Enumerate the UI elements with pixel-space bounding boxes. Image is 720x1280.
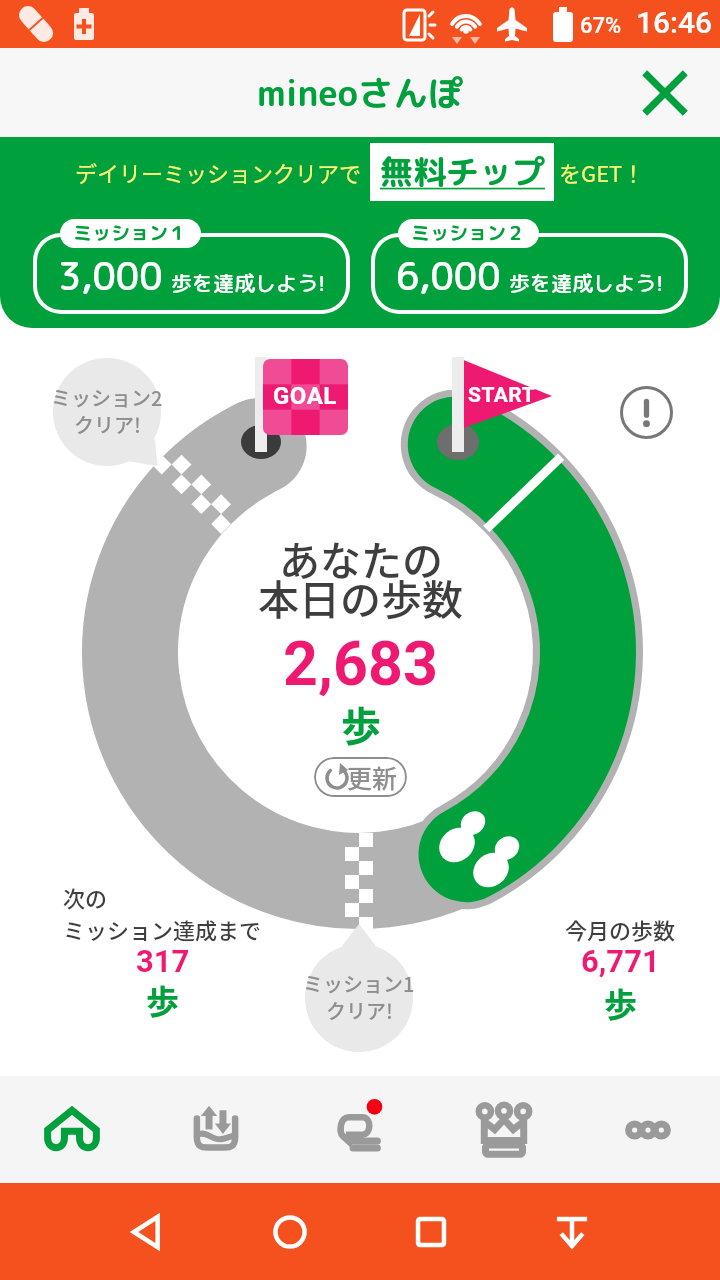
button[interactable]: 更新 bbox=[314, 757, 407, 797]
staticText: 317 bbox=[136, 943, 190, 979]
button[interactable]: Hide keyboard bbox=[501, 1183, 642, 1280]
button[interactable]: Close bbox=[638, 66, 692, 120]
staticText: クリア! bbox=[74, 410, 141, 439]
staticText: START bbox=[468, 383, 536, 408]
button[interactable]: Home bbox=[0, 1076, 144, 1183]
staticText: 歩を達成しよう! bbox=[171, 268, 326, 297]
staticText: 67% bbox=[580, 13, 622, 39]
staticText: 無料チップ bbox=[380, 149, 545, 195]
button[interactable]: 無料チップ bbox=[370, 143, 554, 201]
button[interactable]: More bbox=[576, 1076, 720, 1183]
staticText: ミッション1 bbox=[303, 969, 415, 998]
button[interactable]: Recents bbox=[360, 1183, 501, 1280]
button[interactable]: 6,000 bbox=[375, 237, 684, 310]
staticText: 次の bbox=[63, 881, 108, 913]
staticText: 今月の歩数 bbox=[565, 913, 676, 945]
button[interactable]: 3,000 bbox=[37, 237, 346, 310]
button[interactable]: Data bbox=[144, 1076, 288, 1183]
staticText: 歩 bbox=[146, 976, 179, 1024]
button[interactable]: Information bbox=[620, 386, 673, 439]
staticText: 6,771 bbox=[581, 943, 660, 979]
staticText: ミッション達成まで bbox=[63, 913, 262, 945]
staticText: あなたの bbox=[279, 528, 443, 587]
staticText: 2,683 bbox=[283, 628, 438, 699]
staticText: クリア! bbox=[326, 996, 393, 1025]
staticText: 3,000 bbox=[58, 250, 163, 302]
staticText: 歩 bbox=[604, 979, 637, 1027]
staticText: 本日の歩数 bbox=[258, 567, 463, 626]
button[interactable]: Rank bbox=[432, 1076, 576, 1183]
staticText: ミッション２ bbox=[411, 220, 526, 247]
staticText: をGET！ bbox=[559, 156, 645, 188]
staticText: ミッション１ bbox=[73, 220, 188, 247]
staticText: 歩を達成しよう! bbox=[509, 268, 664, 297]
button[interactable]: Back bbox=[78, 1183, 219, 1280]
staticText: 6,000 bbox=[396, 250, 501, 302]
staticText: デイリーミッションクリアで bbox=[75, 156, 362, 188]
button[interactable]: Messages bbox=[288, 1076, 432, 1183]
staticText: 16:46 bbox=[636, 5, 713, 40]
staticText: ミッション2 bbox=[51, 383, 163, 412]
staticText: GOAL bbox=[273, 382, 337, 410]
staticText: 更新 bbox=[347, 759, 398, 795]
staticText: 歩 bbox=[341, 695, 381, 753]
staticText: mineoさんぽ bbox=[257, 68, 463, 117]
button[interactable]: Home bbox=[219, 1183, 360, 1280]
